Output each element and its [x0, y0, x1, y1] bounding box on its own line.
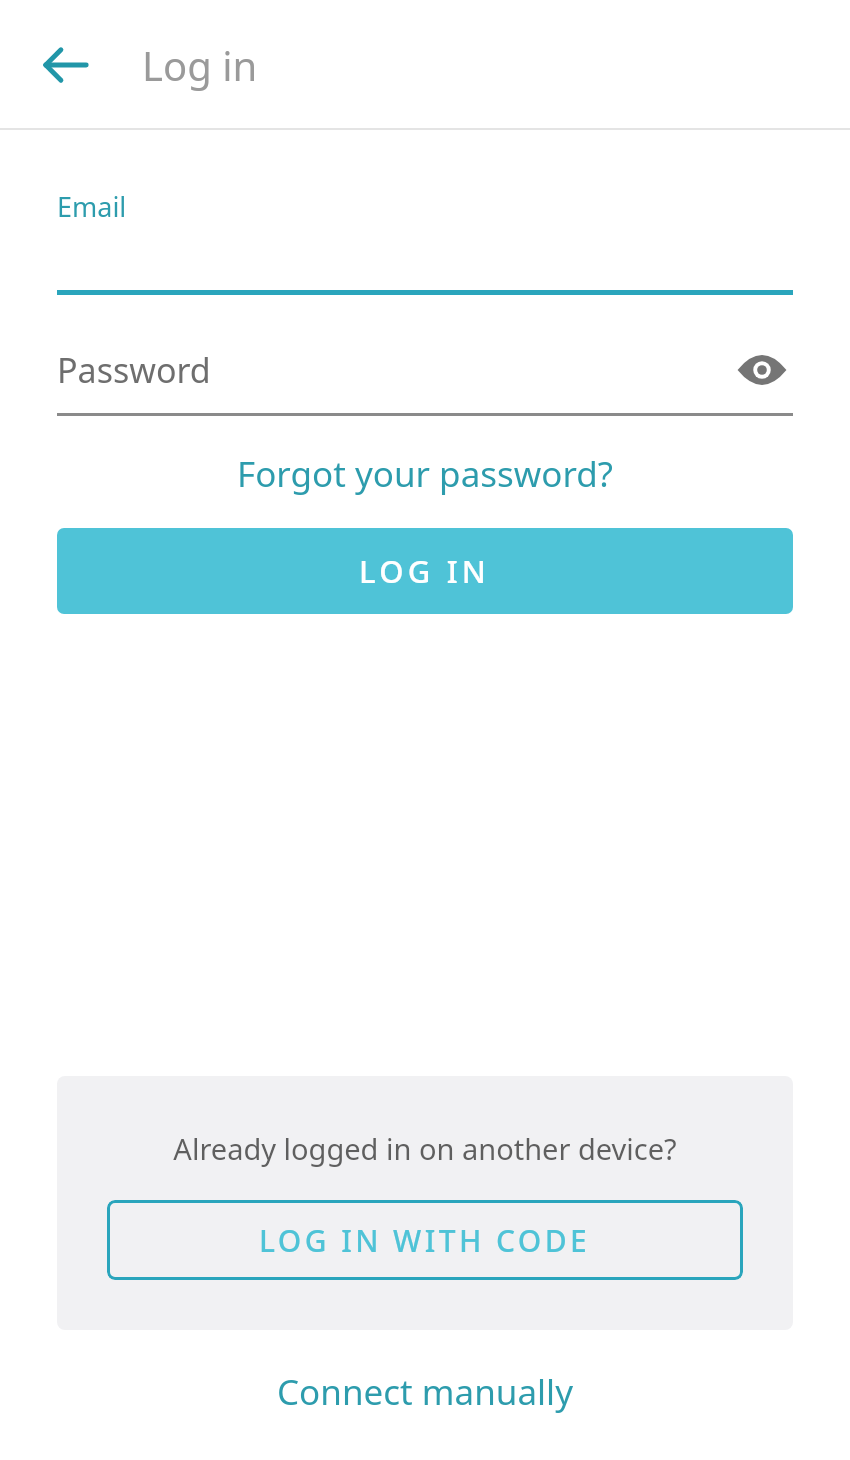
button[interactable]: Email — [57, 188, 793, 295]
button[interactable]: Show password — [731, 339, 793, 401]
button[interactable]: Back — [30, 29, 102, 101]
button[interactable]: Connect manually — [57, 1368, 793, 1416]
staticText: LOG IN — [359, 550, 491, 592]
button[interactable]: Forgot your password? — [57, 450, 793, 498]
button[interactable]: Password — [57, 327, 793, 413]
staticText: Forgot your password? — [237, 450, 613, 498]
staticText: Log in — [142, 38, 258, 92]
staticText: Email — [57, 188, 127, 225]
staticText: Connect manually — [277, 1368, 573, 1416]
button[interactable]: LOG IN — [57, 528, 793, 614]
staticText: Password — [57, 347, 211, 393]
staticText: Already logged in on another device? — [173, 1129, 677, 1168]
staticText: LOG IN WITH CODE — [259, 1220, 591, 1261]
button[interactable]: LOG IN WITH CODE — [107, 1200, 743, 1280]
